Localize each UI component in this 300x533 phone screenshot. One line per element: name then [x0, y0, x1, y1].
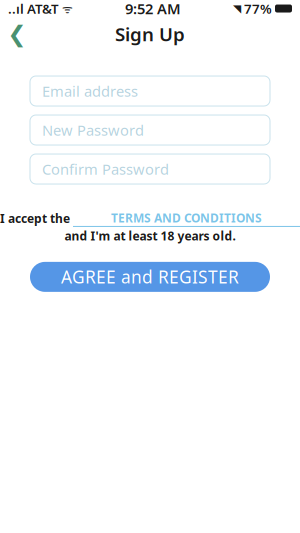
staticText: I accept the — [0, 210, 70, 226]
staticText: TERMS AND CONDITIONS — [111, 210, 262, 226]
button[interactable]: TERMS AND CONDITIONS — [73, 210, 300, 227]
staticText: ❮ — [7, 21, 26, 47]
button[interactable]: New Password — [30, 115, 270, 145]
staticText: ᯤ — [59, 0, 73, 16]
staticText: 77% — [241, 0, 272, 17]
button[interactable]: Back — [0, 17, 34, 51]
staticText: New Password — [42, 120, 144, 140]
staticText: Sign Up — [115, 22, 185, 46]
staticText: ..ıl AT&T — [8, 0, 59, 17]
button[interactable]: Email address — [30, 76, 270, 106]
staticText: AGREE and REGISTER — [61, 265, 239, 288]
staticText: 9:52 AM — [125, 0, 181, 18]
staticText: Email address — [42, 81, 138, 101]
staticText: Confirm Password — [42, 159, 169, 179]
staticText: ◥ — [233, 2, 241, 14]
staticText: and I'm at least 18 years old. — [64, 228, 235, 244]
button[interactable]: Confirm Password — [30, 154, 270, 184]
button[interactable]: AGREE and REGISTER — [30, 262, 270, 292]
